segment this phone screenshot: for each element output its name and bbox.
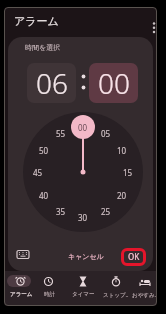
staticText: 45 [33, 167, 43, 178]
staticText: タイマー [72, 291, 95, 298]
staticText: アラーム [14, 14, 59, 28]
staticText: 15 [123, 167, 133, 178]
staticText: 50 [39, 145, 49, 156]
staticText: 55 [56, 128, 66, 139]
staticText: 35 [56, 206, 66, 217]
staticText: ストップ.. [103, 291, 129, 299]
staticText: 時間を選択 [25, 43, 61, 52]
staticText: 00 [78, 122, 88, 133]
staticText: 05 [101, 128, 111, 139]
button[interactable] [16, 249, 30, 260]
staticText: 20 [117, 190, 127, 201]
button[interactable] [35, 271, 63, 306]
staticText: 30 [78, 212, 88, 223]
button[interactable] [131, 271, 157, 306]
staticText: 40 [39, 190, 49, 201]
button[interactable] [7, 271, 35, 306]
button[interactable]: キャンセル [66, 250, 106, 262]
button[interactable]: 00 [89, 63, 138, 103]
button[interactable] [148, 21, 157, 35]
staticText: アラーム [10, 291, 33, 298]
button[interactable]: OK [123, 250, 144, 262]
staticText: 06 [36, 64, 68, 102]
staticText: 時計 [44, 291, 55, 298]
staticText: おやすみ.. [132, 291, 157, 299]
button[interactable]: 06 [27, 63, 76, 103]
button[interactable]: 00 [23, 112, 143, 232]
staticText: 00 [98, 64, 130, 102]
button[interactable] [102, 271, 130, 306]
staticText: 25 [101, 206, 111, 217]
button[interactable] [69, 271, 97, 306]
staticText: OK [128, 251, 140, 262]
staticText: キャンセル [68, 252, 104, 261]
staticText: 10 [117, 145, 127, 156]
